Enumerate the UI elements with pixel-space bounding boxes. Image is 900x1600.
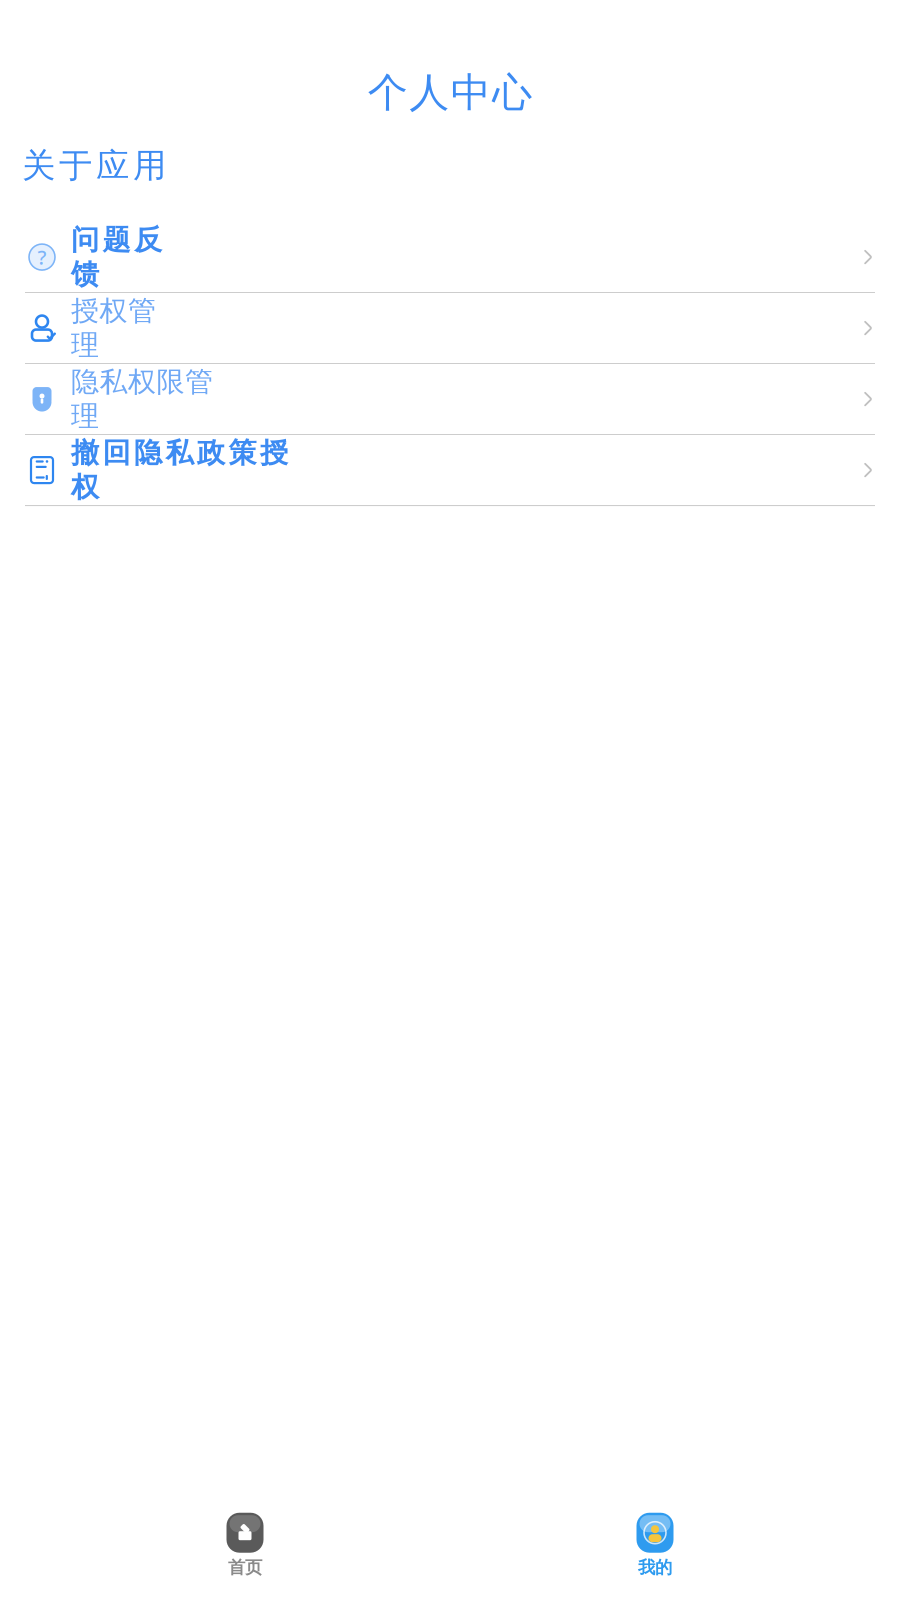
staticText: 问题反馈 [71,223,162,291]
staticText: 撤回隐私政策授权 [71,436,288,504]
staticText: ? [37,244,46,270]
button[interactable]: 撤回隐私政策授权 [0,435,900,506]
staticText: 授权管理 [71,294,156,362]
staticText: 关于应用 [22,145,166,186]
button[interactable]: 授权管理 [0,293,900,364]
staticText: 我的 [638,1557,672,1578]
staticText: 隐私权限管理 [71,365,213,433]
staticText: 个人中心 [368,68,532,117]
button[interactable]: 我的 [450,1508,860,1582]
button[interactable]: 首页 [40,1508,450,1582]
staticText: 首页 [228,1557,262,1578]
button[interactable]: ? [0,222,900,293]
button[interactable]: 隐私权限管理 [0,364,900,435]
